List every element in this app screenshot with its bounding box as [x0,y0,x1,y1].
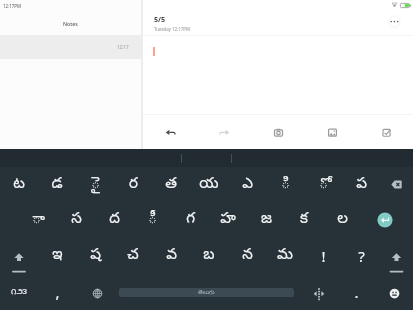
button[interactable]: ప [342,167,380,202]
staticText: క [300,210,308,230]
button[interactable]: ! [304,238,342,274]
staticText: ద [109,210,120,230]
button[interactable]: 12:17 [0,35,141,59]
staticText: ల [337,210,348,230]
staticText: ీ [148,210,157,230]
staticText: ో [319,175,328,195]
staticText: , [55,282,60,302]
button[interactable]: ల [323,202,361,238]
staticText: 12:17 [117,44,129,50]
button[interactable]: Move cursor [299,274,337,310]
button[interactable]: Emoji [375,274,413,310]
staticText: 5/5 [154,14,166,24]
staticText: Notes [63,20,78,27]
staticText: ఇ [52,246,63,266]
staticText: ా [32,210,45,230]
button[interactable]: తెలుగు [114,274,299,310]
staticText: Tuesday 12:17PM [154,26,190,32]
staticText: స [71,210,82,230]
staticText: బ [203,246,215,266]
button[interactable]: Shift [0,238,38,274]
button[interactable]: . [337,274,375,310]
button[interactable]: బ [190,238,228,274]
button[interactable]: హ [209,202,247,238]
button[interactable]: Backspace [380,167,413,202]
staticText: . [354,282,359,302]
button[interactable]: మ [266,238,304,274]
staticText: మ [277,246,293,266]
button[interactable]: ి [266,167,304,202]
button[interactable]: న [228,238,266,274]
staticText: ! [321,246,326,266]
staticText: డ [51,175,63,195]
staticText: ష [90,246,101,266]
button[interactable]: జ [247,202,285,238]
button[interactable]: Camera [251,115,305,149]
staticText: ి [281,175,290,195]
button[interactable]: ై [76,167,114,202]
button[interactable]: త [152,167,190,202]
button[interactable]: య [190,167,228,202]
staticText: న [242,246,253,266]
staticText: వ [166,246,177,266]
staticText: 12:17PM [3,3,21,9]
button[interactable]: ష [76,238,114,274]
button[interactable]: ద [95,202,133,238]
staticText: ర [129,175,138,195]
button[interactable]: వ [152,238,190,274]
staticText: చ [127,246,139,266]
button[interactable]: స [57,202,95,238]
button[interactable]: More options [388,15,401,28]
button[interactable]: ా [19,202,57,238]
button[interactable]: ర [114,167,152,202]
button[interactable]: చ [114,238,152,274]
staticText: హ [220,210,236,230]
button[interactable]: Undo [143,115,197,149]
button[interactable]: , [38,274,76,310]
staticText: జ [261,210,272,230]
button[interactable]: Redo [197,115,251,149]
staticText: ఎ [242,175,253,195]
button[interactable]: ౧౨౩ [0,274,38,310]
button[interactable]: Switch language [76,274,114,310]
button[interactable]: గ [171,202,209,238]
button[interactable]: Insert image [305,115,359,149]
button[interactable]: Enter [361,202,413,238]
button[interactable]: Checklist [359,115,413,149]
button[interactable]: ీ [133,202,171,238]
staticText: ౧౨౩ [11,287,27,298]
button[interactable]: క [285,202,323,238]
button[interactable]: ట [0,167,38,202]
staticText: తెలుగు [198,289,215,297]
button[interactable]: ఇ [38,238,76,274]
staticText: ై [91,175,100,195]
button[interactable]: ఎ [228,167,266,202]
staticText: య [199,175,219,195]
staticText: గ [186,210,195,230]
button[interactable]: డ [38,167,76,202]
button[interactable]: ో [304,167,342,202]
staticText: ? [358,246,365,266]
staticText: ప [356,175,367,195]
staticText: ట [13,175,25,195]
staticText: త [165,175,177,195]
button[interactable]: Shift [380,238,413,274]
button[interactable]: ? [342,238,380,274]
